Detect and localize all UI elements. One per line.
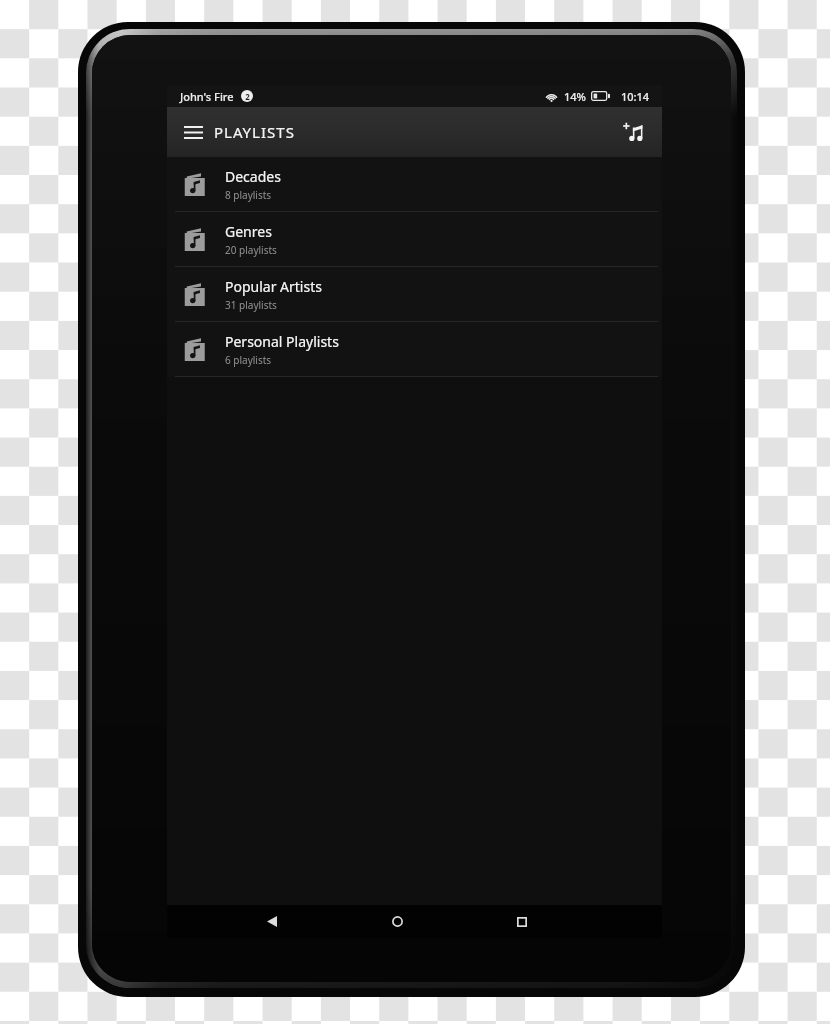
button[interactable]: Create playlist xyxy=(613,112,653,152)
staticText: 14% xyxy=(564,89,586,104)
staticText: John's Fire xyxy=(180,89,234,104)
button[interactable]: Popular Artists xyxy=(167,267,662,321)
staticText: 31 playlists xyxy=(225,298,277,312)
button[interactable]: Back xyxy=(255,905,289,938)
staticText: Genres xyxy=(225,222,272,241)
staticText: 10:14 xyxy=(621,89,650,104)
staticText: 6 playlists xyxy=(225,353,272,367)
button[interactable]: Open navigation menu xyxy=(175,114,211,150)
staticText: 2 xyxy=(245,91,250,102)
button[interactable]: Personal Playlists xyxy=(167,322,662,376)
staticText: 8 playlists xyxy=(225,188,272,202)
staticText: 20 playlists xyxy=(225,243,277,257)
staticText: Popular Artists xyxy=(225,277,322,296)
staticText: Decades xyxy=(225,167,281,186)
button[interactable]: Home xyxy=(380,905,414,938)
button[interactable]: Decades xyxy=(167,157,662,211)
button[interactable]: Recent apps xyxy=(505,905,539,938)
button[interactable]: Genres xyxy=(167,212,662,266)
staticText: Personal Playlists xyxy=(225,332,339,351)
staticText: PLAYLISTS xyxy=(214,122,295,142)
